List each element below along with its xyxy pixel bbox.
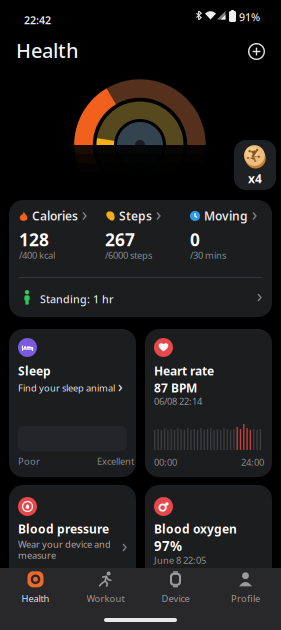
button[interactable]: Add xyxy=(248,43,265,60)
staticText: Device xyxy=(161,592,189,605)
staticText: Sleep xyxy=(18,363,51,379)
staticText: 22:42 xyxy=(24,13,51,27)
staticText: Excellent xyxy=(97,455,134,467)
staticText: /6000 steps xyxy=(105,249,152,261)
staticText: 128 xyxy=(19,228,49,251)
staticText: Blood pressure xyxy=(18,521,109,537)
staticText: measure xyxy=(18,549,56,561)
button[interactable]: Steps xyxy=(105,203,190,269)
button[interactable]: Rewards x4 xyxy=(234,140,276,190)
staticText: 267 xyxy=(105,228,135,251)
button[interactable]: Blood pressure xyxy=(9,485,136,630)
button[interactable]: Sleep xyxy=(9,329,136,477)
staticText: Find your sleep animal xyxy=(18,382,115,394)
staticText: Health xyxy=(16,37,79,64)
button[interactable]: Moving xyxy=(190,203,275,269)
staticText: Poor xyxy=(18,455,40,467)
staticText: Calories xyxy=(32,208,78,224)
staticText: Profile xyxy=(231,592,260,605)
button[interactable]: Profile xyxy=(210,570,280,606)
button[interactable]: Blood oxygen xyxy=(145,485,272,630)
staticText: 97% xyxy=(154,537,182,555)
button[interactable]: Health xyxy=(0,570,70,606)
staticText: 06/08 22:14 xyxy=(154,395,202,407)
staticText: June 8 22:05 xyxy=(154,554,206,566)
staticText: Heart rate xyxy=(154,363,214,379)
staticText: /400 kcal xyxy=(19,249,55,261)
staticText: 87 BPM xyxy=(154,380,197,396)
staticText: 24:00 xyxy=(241,456,264,468)
button[interactable]: Device xyxy=(140,570,210,606)
staticText: x4 xyxy=(248,170,262,186)
button[interactable]: Workout xyxy=(70,570,140,606)
button[interactable]: Standing: 1 hr xyxy=(9,277,272,317)
staticText: 91% xyxy=(239,10,260,24)
staticText: Wear your device and xyxy=(18,538,111,550)
staticText: /30 mins xyxy=(190,249,226,261)
button[interactable]: Calories xyxy=(19,203,104,269)
staticText: 0 xyxy=(190,228,200,251)
staticText: 00:00 xyxy=(154,456,177,468)
staticText: Health xyxy=(21,592,49,605)
staticText: Standing: 1 hr xyxy=(40,292,114,306)
staticText: Steps xyxy=(119,208,152,224)
button[interactable]: Heart rate xyxy=(145,329,272,477)
staticText: Blood oxygen xyxy=(154,521,237,537)
staticText: Moving xyxy=(204,208,248,224)
staticText: Workout xyxy=(86,592,124,605)
